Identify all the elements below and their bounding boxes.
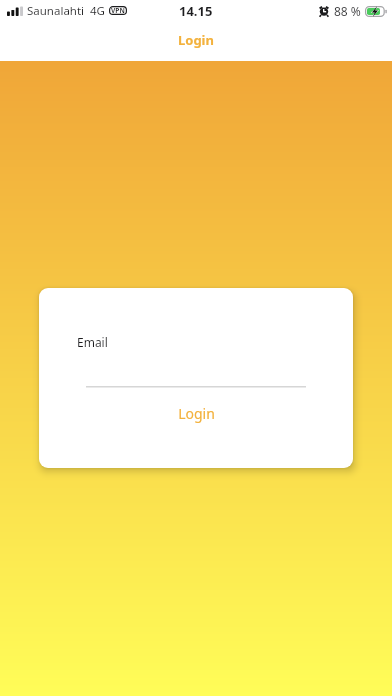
button[interactable]: Login [0,22,392,61]
other: Battery charging, 88 percent [365,6,387,17]
staticText: Email [77,334,108,350]
staticText: Saunalahti [27,3,85,19]
other: Cellular signal strength [7,6,23,16]
staticText: Login [178,31,214,49]
staticText: 14.15 [179,2,213,20]
button[interactable]: Login [39,398,353,428]
button[interactable]: Email [77,330,315,390]
staticText: VPN [111,6,125,15]
staticText: 88 % [334,3,361,19]
staticText: 4G [90,3,105,19]
staticText: Login [178,404,215,423]
other: Alarm set [319,5,329,17]
